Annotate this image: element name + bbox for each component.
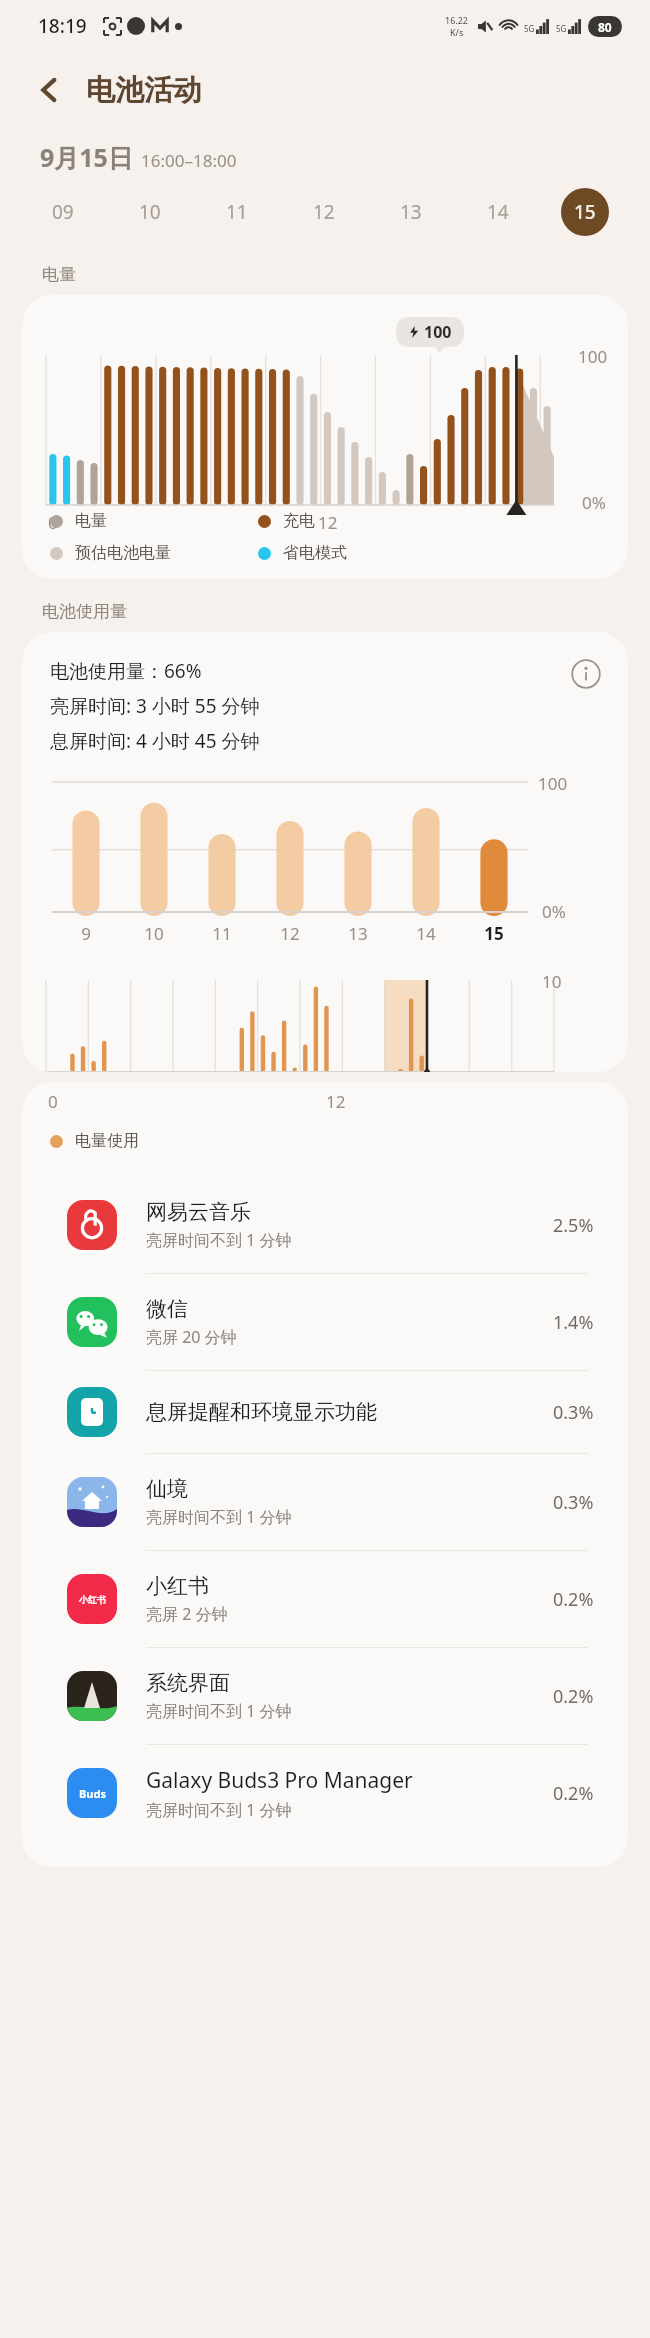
staticText: K/s bbox=[450, 26, 464, 38]
staticText: 电量使用 bbox=[75, 1131, 139, 1151]
staticText: 0.2% bbox=[553, 1781, 594, 1806]
button[interactable]: 息屏提醒和环境显示功能 bbox=[22, 1371, 628, 1453]
staticText: 12 bbox=[313, 199, 335, 225]
staticText: 亮屏时间不到 1 分钟 bbox=[146, 1506, 292, 1528]
staticText: 13 bbox=[348, 922, 368, 945]
staticText: 12 bbox=[318, 511, 338, 534]
staticText: 14 bbox=[416, 922, 436, 945]
staticText: 仙境 bbox=[146, 1476, 188, 1502]
button[interactable]: 13 bbox=[367, 181, 454, 243]
staticText: 1.4% bbox=[553, 1310, 594, 1335]
staticText: 0% bbox=[542, 900, 566, 923]
button[interactable]: Buds bbox=[22, 1745, 628, 1841]
staticText: 5G bbox=[524, 23, 535, 34]
button[interactable]: 仙境 bbox=[22, 1454, 628, 1550]
staticText: 亮屏时间不到 1 分钟 bbox=[146, 1700, 292, 1722]
staticText: 0.2% bbox=[553, 1684, 594, 1709]
staticText: 电量 bbox=[75, 511, 107, 531]
staticText: 12 bbox=[280, 922, 300, 945]
staticText: 电池使用量 bbox=[42, 601, 127, 622]
staticText: 100 bbox=[538, 772, 568, 795]
button[interactable]: 返回 bbox=[24, 64, 76, 116]
staticText: 13 bbox=[400, 199, 422, 225]
staticText: 息屏提醒和环境显示功能 bbox=[146, 1399, 377, 1425]
button[interactable]: 网易云音乐 bbox=[22, 1177, 628, 1273]
staticText: 小红书 bbox=[79, 1594, 106, 1605]
staticText: 充电 bbox=[283, 511, 315, 531]
button[interactable]: 微信 bbox=[22, 1274, 628, 1370]
button[interactable]: 小红书 bbox=[22, 1551, 628, 1647]
staticText: 12 bbox=[326, 1090, 346, 1113]
staticText: 14 bbox=[487, 199, 509, 225]
staticText: 10 bbox=[542, 970, 562, 993]
staticText: 亮屏 20 分钟 bbox=[146, 1326, 237, 1348]
staticText: 80 bbox=[598, 19, 612, 35]
staticText: 小红书 bbox=[146, 1573, 209, 1599]
staticText: 16.22 bbox=[445, 14, 469, 26]
staticText: 省电模式 bbox=[283, 543, 347, 563]
staticText: 微信 bbox=[146, 1296, 188, 1322]
staticText: 9月15日 bbox=[40, 140, 133, 174]
staticText: 电量 bbox=[42, 264, 76, 285]
staticText: 100 bbox=[424, 321, 452, 343]
staticText: 5G bbox=[556, 23, 567, 34]
staticText: 预估电池电量 bbox=[75, 543, 171, 563]
staticText: 亮屏时间不到 1 分钟 bbox=[146, 1799, 292, 1821]
staticText: 0% bbox=[582, 491, 606, 514]
button[interactable]: 15 bbox=[541, 181, 628, 243]
staticText: 息屏时间: 4 小时 45 分钟 bbox=[50, 728, 260, 754]
staticText: 100 bbox=[578, 345, 608, 368]
staticText: 0 bbox=[48, 1090, 58, 1113]
staticText: 9 bbox=[81, 922, 91, 945]
staticText: Buds bbox=[79, 1786, 106, 1801]
staticText: 0 bbox=[48, 511, 58, 534]
staticText: 电池使用量：66% bbox=[50, 658, 202, 684]
staticText: 2.5% bbox=[553, 1213, 594, 1238]
button[interactable]: 10 bbox=[106, 181, 193, 243]
staticText: 亮屏时间不到 1 分钟 bbox=[146, 1229, 292, 1251]
staticText: 网易云音乐 bbox=[146, 1199, 251, 1225]
staticText: Galaxy Buds3 Pro Manager bbox=[146, 1766, 413, 1795]
button[interactable]: 12 bbox=[280, 181, 367, 243]
button[interactable]: 09 bbox=[20, 181, 106, 243]
staticText: 16:00–18:00 bbox=[141, 149, 237, 172]
staticText: 18:19 bbox=[38, 13, 87, 39]
staticText: 15 bbox=[574, 199, 596, 225]
staticText: 10 bbox=[139, 199, 161, 225]
button[interactable]: 11 bbox=[193, 181, 280, 243]
button[interactable]: 详细信息 bbox=[564, 652, 608, 696]
button[interactable]: 系统界面 bbox=[22, 1648, 628, 1744]
button[interactable]: 14 bbox=[454, 181, 541, 243]
staticText: 11 bbox=[212, 922, 232, 945]
staticText: 亮屏时间: 3 小时 55 分钟 bbox=[50, 693, 260, 719]
staticText: 10 bbox=[144, 922, 164, 945]
staticText: 09 bbox=[52, 199, 74, 225]
staticText: 电池活动 bbox=[86, 72, 202, 109]
staticText: 11 bbox=[226, 199, 248, 225]
staticText: 0.3% bbox=[553, 1400, 594, 1425]
button[interactable]: 100 bbox=[22, 295, 628, 579]
staticText: 0.3% bbox=[553, 1490, 594, 1515]
staticText: 系统界面 bbox=[146, 1670, 230, 1696]
staticText: 15 bbox=[484, 922, 504, 945]
staticText: 亮屏 2 分钟 bbox=[146, 1603, 228, 1625]
staticText: 0.2% bbox=[553, 1587, 594, 1612]
